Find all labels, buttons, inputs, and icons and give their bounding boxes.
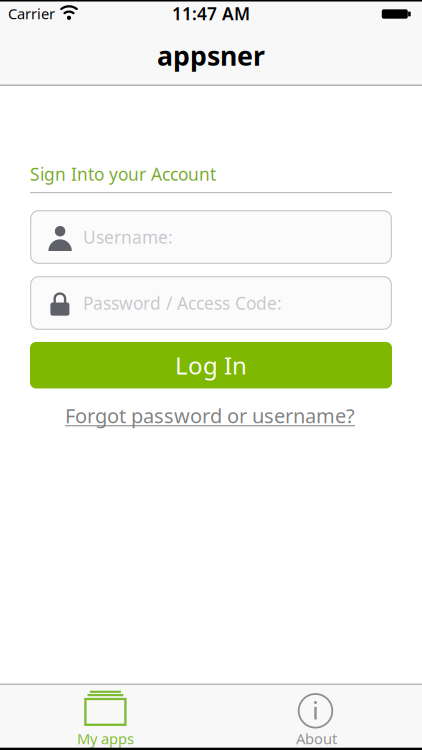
staticText: Log In (175, 349, 247, 381)
staticText: Password / Access Code: (83, 291, 282, 314)
button[interactable]: About (264, 684, 369, 748)
staticText: My apps (77, 729, 134, 748)
button[interactable]: Forgot password or username? (65, 402, 355, 429)
button[interactable]: My apps (53, 684, 158, 748)
staticText: appsner (157, 38, 265, 73)
staticText: 11:47 AM (172, 2, 250, 25)
button[interactable]: Log In (30, 342, 392, 388)
staticText: Sign Into your Account (30, 162, 216, 185)
staticText: Carrier (8, 4, 55, 23)
button[interactable]: Password / Access Code (30, 276, 392, 330)
staticText: About (296, 729, 337, 748)
staticText: Forgot password or username? (65, 402, 355, 429)
staticText: Username: (83, 225, 173, 248)
button[interactable]: Username (30, 210, 392, 264)
